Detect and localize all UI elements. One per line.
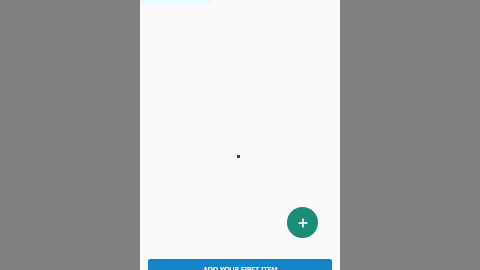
staticText: ADD YOUR FIRST ITEM xyxy=(203,265,278,270)
button[interactable]: ADD YOUR FIRST ITEM xyxy=(148,259,332,270)
button[interactable]: Add xyxy=(287,207,318,238)
